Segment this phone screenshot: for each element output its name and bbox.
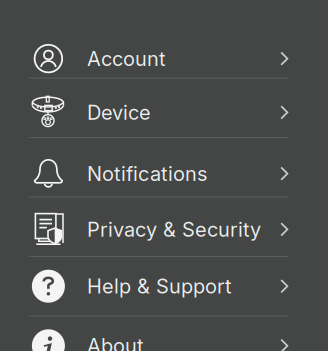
staticText: Account [87,46,166,71]
button[interactable]: Help & Support [0,256,328,316]
staticText: About [87,334,144,351]
button[interactable]: Privacy & Security [0,197,328,256]
button[interactable]: Device [0,78,328,137]
button[interactable]: Notifications [0,137,328,197]
staticText: Privacy & Security [87,217,261,241]
button[interactable]: Account [0,0,328,78]
staticText: Help & Support [87,274,232,298]
staticText: Device [87,100,151,124]
button[interactable]: About [0,316,328,351]
staticText: Notifications [87,161,207,186]
